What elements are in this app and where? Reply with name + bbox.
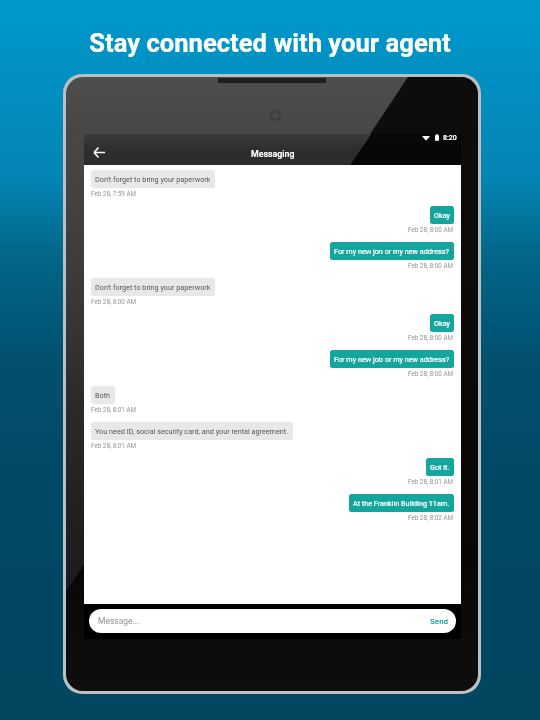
staticText: Both: [95, 391, 111, 399]
staticText: Feb 28, 8:00 AM: [408, 334, 454, 341]
staticText: Feb 28, 8:02 AM: [408, 514, 454, 521]
button[interactable]: At the Franklin Building 11am.: [349, 494, 454, 512]
staticText: For my new jon or my new address?: [334, 247, 450, 255]
staticText: For my new job or my new address?: [334, 355, 450, 363]
button[interactable]: Don't forget to bring your paperwork: [91, 278, 215, 296]
staticText: 8:20: [443, 134, 457, 141]
button[interactable]: Don't forget to bring your paperwork: [91, 170, 215, 188]
button[interactable]: Okay: [430, 314, 454, 332]
staticText: Okay: [434, 319, 450, 327]
button[interactable]: Got it.: [426, 458, 454, 476]
staticText: Okay: [434, 211, 450, 219]
staticText: Feb 28, 8:00 AM: [408, 262, 454, 269]
staticText: You need ID, social security card, and y…: [95, 427, 289, 435]
staticText: Feb 28, 8:00 AM: [91, 298, 137, 305]
button[interactable]: You need ID, social security card, and y…: [91, 422, 293, 440]
button[interactable]: Back: [88, 141, 110, 163]
staticText: Feb 28, 7:59 AM: [91, 190, 137, 197]
button[interactable]: Okay: [430, 206, 454, 224]
staticText: Don't forget to bring your paperwork: [95, 283, 211, 291]
staticText: Feb 28, 8:01 AM: [91, 442, 137, 449]
staticText: Feb 28, 8:01 AM: [408, 478, 454, 485]
staticText: Feb 28, 8:01 AM: [91, 406, 137, 413]
staticText: Messaging: [251, 149, 295, 159]
staticText: Stay connected with your agent: [0, 28, 540, 58]
button[interactable]: For my new job or my new address?: [330, 350, 454, 368]
staticText: Don't forget to bring your paperwork: [95, 175, 211, 183]
staticText: Send: [430, 617, 449, 626]
button[interactable]: Message...: [89, 609, 456, 633]
staticText: At the Franklin Building 11am.: [353, 499, 450, 507]
button[interactable]: For my new jon or my new address?: [330, 242, 454, 260]
staticText: Feb 28, 8:00 AM: [408, 226, 454, 233]
staticText: Got it.: [430, 463, 450, 471]
staticText: Feb 28, 8:00 AM: [408, 370, 454, 377]
staticText: Message...: [98, 616, 140, 626]
button[interactable]: Both: [91, 386, 115, 404]
